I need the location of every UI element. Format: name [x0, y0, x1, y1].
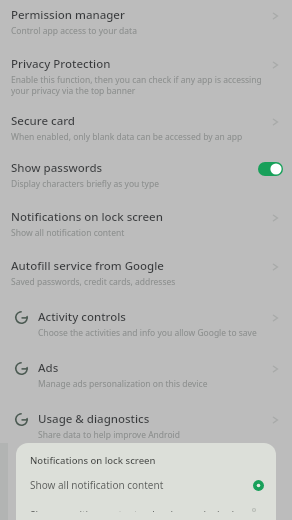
button[interactable]: Show all notification content [16, 470, 276, 500]
staticText: Activity controls [38, 309, 126, 325]
button[interactable]: Activity controls [0, 288, 292, 339]
staticText: Manage ads personalization on this devic… [38, 378, 208, 390]
button[interactable]: Show sensitive content only when unlocke… [16, 500, 276, 520]
staticText: Autofill service from Google [11, 258, 164, 274]
staticText: Secure card [11, 113, 75, 129]
button[interactable]: Usage & diagnostics [0, 390, 292, 441]
staticText: When enabled, only blank data can be acc… [11, 131, 243, 143]
staticText: Show all notification content [11, 227, 125, 239]
staticText: Notifications on lock screen [11, 209, 163, 225]
staticText: Show all notification content [30, 478, 246, 492]
button[interactable]: Notifications on lock screen [0, 190, 292, 239]
staticText: Privacy Protection [11, 56, 111, 72]
staticText: Share data to help improve Android [38, 429, 180, 441]
staticText: Usage & diagnostics [38, 411, 150, 427]
button[interactable]: Autofill service from Google [0, 239, 292, 288]
staticText: Choose the activities and info you allow… [38, 327, 257, 339]
staticText: Enable this function, then you can check… [11, 74, 263, 96]
button[interactable]: Show passwords [0, 143, 292, 190]
staticText: Display characters briefly as you type [11, 178, 159, 190]
staticText: Permission manager [11, 7, 125, 23]
button[interactable]: Show passwords toggle [258, 162, 283, 176]
staticText: Show passwords [11, 160, 103, 176]
staticText: Saved passwords, credit cards, addresses [11, 276, 176, 288]
button[interactable]: Ads [0, 339, 292, 390]
button[interactable]: Secure card [0, 96, 292, 143]
staticText: Control app access to your data [11, 25, 137, 37]
button[interactable]: Permission manager [0, 0, 292, 37]
staticText: Show sensitive content only when unlocke… [30, 508, 246, 512]
button[interactable]: Privacy Protection [0, 37, 292, 96]
staticText: Ads [38, 360, 59, 376]
staticText: Notifications on lock screen [30, 454, 156, 467]
